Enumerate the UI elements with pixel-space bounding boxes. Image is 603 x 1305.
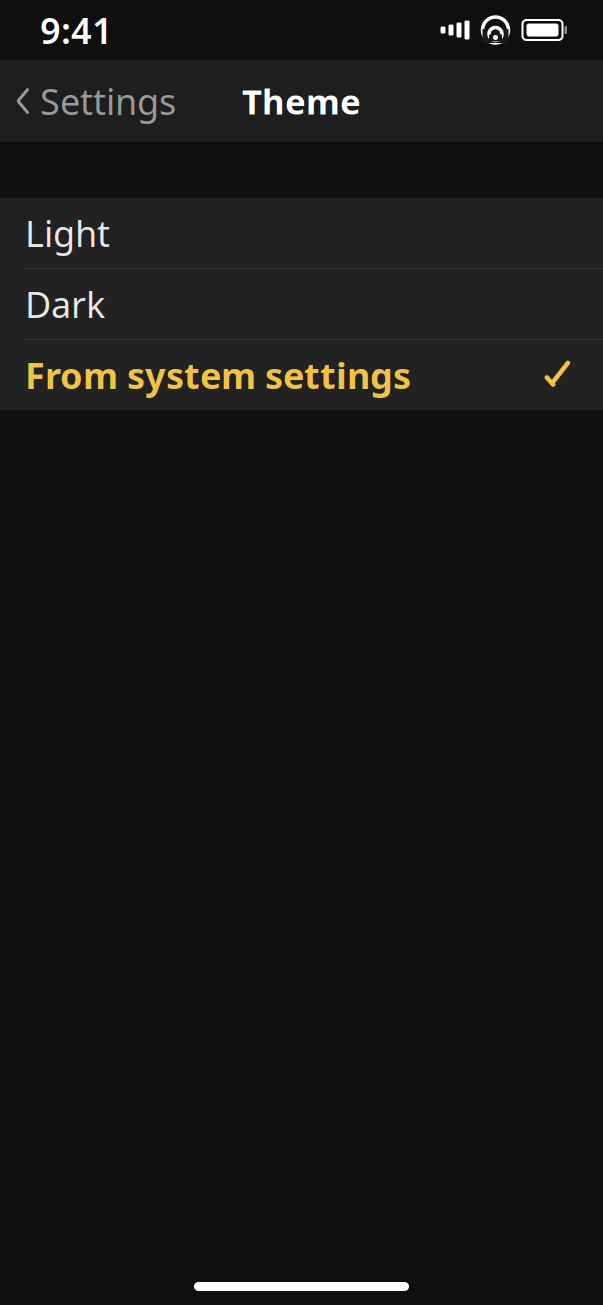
staticText: Theme [242, 78, 361, 124]
button[interactable]: Settings [0, 60, 186, 142]
button[interactable]: Light [0, 198, 603, 268]
staticText: Dark [25, 280, 105, 328]
staticText: Settings [40, 77, 176, 125]
staticText: 9:41 [40, 6, 113, 54]
button[interactable]: Dark [0, 269, 603, 339]
staticText: From system settings [25, 351, 411, 399]
button[interactable]: From system settings [0, 340, 603, 410]
staticText: Light [25, 209, 110, 257]
